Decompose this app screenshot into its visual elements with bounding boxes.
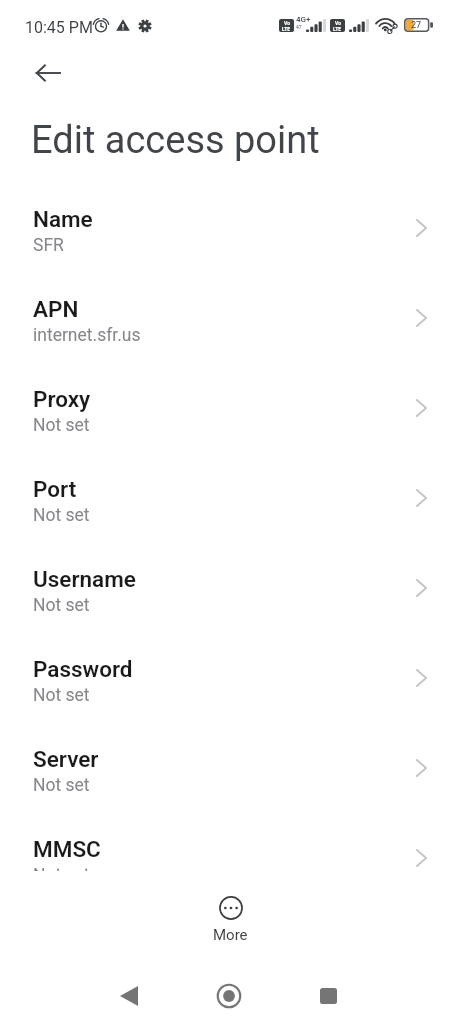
button[interactable]: APN	[0, 279, 461, 369]
staticText: More	[213, 926, 248, 944]
button[interactable]: Back	[28, 53, 68, 93]
button[interactable]: Password	[0, 639, 461, 729]
button[interactable]: MMSC	[0, 819, 461, 871]
staticText: MMSC	[33, 836, 101, 862]
staticText: Vo	[335, 20, 341, 26]
button[interactable]: Proxy	[0, 369, 461, 459]
staticText: Not set	[33, 865, 90, 871]
staticText: Port	[33, 476, 77, 502]
button[interactable]: Name	[0, 189, 461, 279]
staticText: Not set	[33, 505, 90, 526]
staticText: 47	[296, 24, 302, 30]
staticText: LTE	[333, 26, 342, 32]
staticText: Username	[33, 566, 136, 592]
button[interactable]: Recent apps	[304, 980, 352, 1024]
button[interactable]: More	[213, 896, 248, 944]
staticText: Server	[33, 746, 99, 772]
staticText: Not set	[33, 775, 90, 796]
staticText: Not set	[33, 595, 90, 616]
button[interactable]: Username	[0, 549, 461, 639]
staticText: 27	[411, 20, 422, 31]
staticText: SFR	[33, 235, 64, 256]
staticText: Edit access point	[31, 118, 320, 163]
staticText: Not set	[33, 685, 90, 706]
staticText: Name	[33, 206, 93, 232]
staticText: Password	[33, 656, 133, 682]
staticText: 4G+	[296, 15, 311, 24]
staticText: Not set	[33, 415, 90, 436]
staticText: Vo	[284, 20, 290, 26]
staticText: Proxy	[33, 386, 91, 412]
staticText: internet.sfr.us	[33, 325, 141, 346]
staticText: LTE	[282, 26, 291, 32]
button[interactable]: Back	[104, 980, 154, 1024]
button[interactable]: Home	[205, 980, 253, 1024]
staticText: APN	[33, 296, 79, 322]
button[interactable]: Server	[0, 729, 461, 819]
staticText: 10:45 PM	[25, 18, 93, 37]
button[interactable]: Port	[0, 459, 461, 549]
